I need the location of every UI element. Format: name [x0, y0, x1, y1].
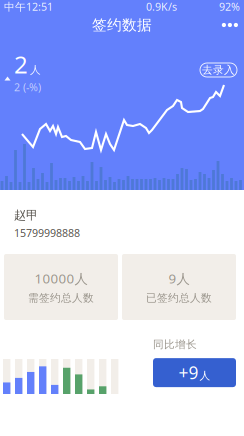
staticText: 92%	[219, 0, 240, 14]
staticText: 9人	[168, 270, 189, 287]
staticText: 15799998888	[14, 226, 80, 240]
staticText: 2 (-%)	[14, 80, 41, 94]
staticText: 需签约总人数	[28, 291, 94, 304]
button[interactable]: +9	[153, 358, 236, 387]
staticText: 人	[30, 63, 41, 76]
staticText: 10000人	[34, 270, 87, 287]
staticText: 人	[199, 369, 210, 382]
button[interactable]: 去录入	[200, 63, 237, 77]
staticText: 0.9K/s	[146, 0, 177, 14]
staticText: 中午12:51	[4, 0, 53, 14]
staticText: 同比增长	[153, 338, 197, 351]
staticText: +9	[178, 361, 198, 384]
staticText: 2	[14, 48, 28, 80]
staticText: 赵甲	[14, 208, 38, 223]
button[interactable]: 更多	[206, 13, 244, 37]
staticText: 签约数据	[92, 16, 152, 34]
staticText: 去录入	[202, 63, 235, 76]
staticText: 已签约总人数	[146, 291, 212, 304]
